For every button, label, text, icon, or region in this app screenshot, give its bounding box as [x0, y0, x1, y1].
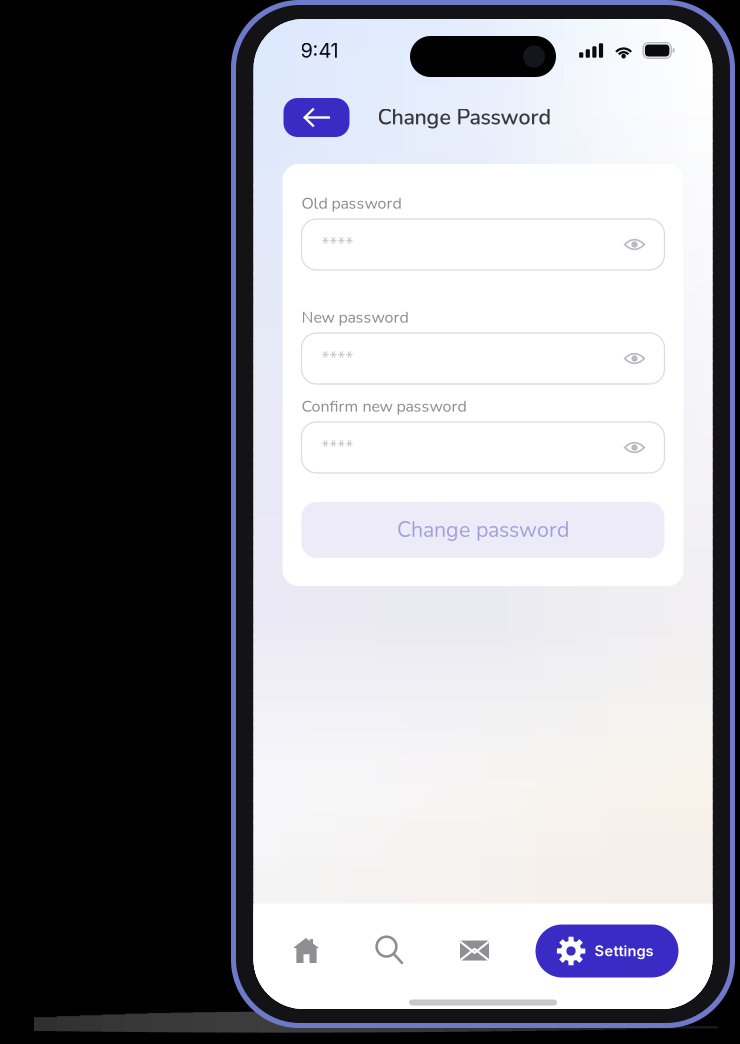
button[interactable]: Show New password	[616, 340, 652, 376]
staticText: Old password	[301, 193, 401, 214]
button[interactable]: Back	[283, 98, 349, 137]
staticText: Change Password	[377, 103, 551, 132]
staticText: Change password	[397, 515, 569, 545]
button[interactable]: Home	[278, 922, 334, 978]
button[interactable]: Change password	[301, 502, 664, 558]
button[interactable]: Settings	[535, 924, 678, 977]
button[interactable]: Show Confirm new password	[616, 429, 652, 465]
staticText: ****	[321, 436, 353, 459]
staticText: Confirm new password	[301, 396, 466, 417]
button[interactable]: Messages	[446, 922, 502, 978]
staticText: 9:41	[300, 38, 338, 63]
staticText: ****	[321, 233, 353, 256]
staticText: New password	[301, 307, 408, 328]
button[interactable]: Search	[361, 922, 417, 978]
staticText: ****	[321, 347, 353, 370]
button[interactable]: Show Old password	[616, 226, 652, 262]
staticText: Settings	[594, 942, 653, 960]
